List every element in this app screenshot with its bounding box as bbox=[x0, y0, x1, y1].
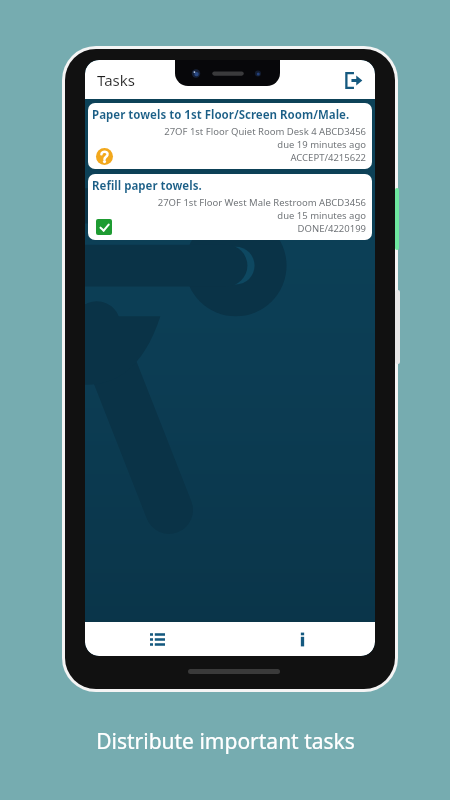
staticText: 27OF 1st Floor Quiet Room Desk 4 ABCD345… bbox=[92, 125, 366, 138]
button[interactable]: Tasks list bbox=[85, 622, 230, 656]
button[interactable]: Done bbox=[95, 218, 113, 236]
staticText: Refill paper towels. bbox=[92, 178, 202, 194]
button[interactable]: Info bbox=[230, 622, 375, 656]
staticText: 27OF 1st Floor West Male Restroom ABCD34… bbox=[92, 196, 366, 209]
button[interactable]: Refill paper towels. bbox=[88, 174, 372, 240]
staticText: ACCEPT/4215622 bbox=[92, 151, 366, 164]
button[interactable]: Pending bbox=[95, 147, 113, 165]
staticText: Distribute important tasks bbox=[96, 727, 355, 756]
staticText: due 19 minutes ago bbox=[92, 138, 366, 151]
staticText: due 15 minutes ago bbox=[92, 209, 366, 222]
staticText: Paper towels to 1st Floor/Screen Room/Ma… bbox=[92, 107, 350, 123]
staticText: Tasks bbox=[97, 70, 135, 90]
button[interactable]: Paper towels to 1st Floor/Screen Room/Ma… bbox=[88, 103, 372, 169]
button[interactable]: Log out bbox=[337, 64, 369, 96]
staticText: DONE/4220199 bbox=[92, 222, 366, 235]
